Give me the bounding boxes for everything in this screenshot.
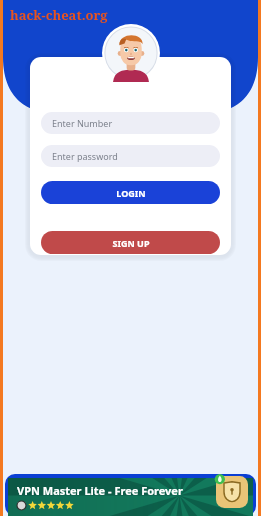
button[interactable]: Enter Number <box>41 112 220 134</box>
button[interactable]: SIGN UP <box>41 231 220 254</box>
staticText: VPN Master Lite - Free Forever <box>17 483 183 498</box>
staticText: hack-cheat.org <box>10 6 108 24</box>
staticText: Enter Number <box>52 117 113 129</box>
button[interactable]: LOGIN <box>41 181 220 204</box>
staticText: SIGN UP <box>112 237 150 249</box>
staticText: LOGIN <box>116 187 146 199</box>
staticText: Enter password <box>52 150 118 162</box>
button[interactable]: VPN Master Lite - Free Forever <box>3 468 258 516</box>
other: VPN Master Lite app icon <box>216 476 248 508</box>
button[interactable]: Enter password <box>41 145 220 167</box>
